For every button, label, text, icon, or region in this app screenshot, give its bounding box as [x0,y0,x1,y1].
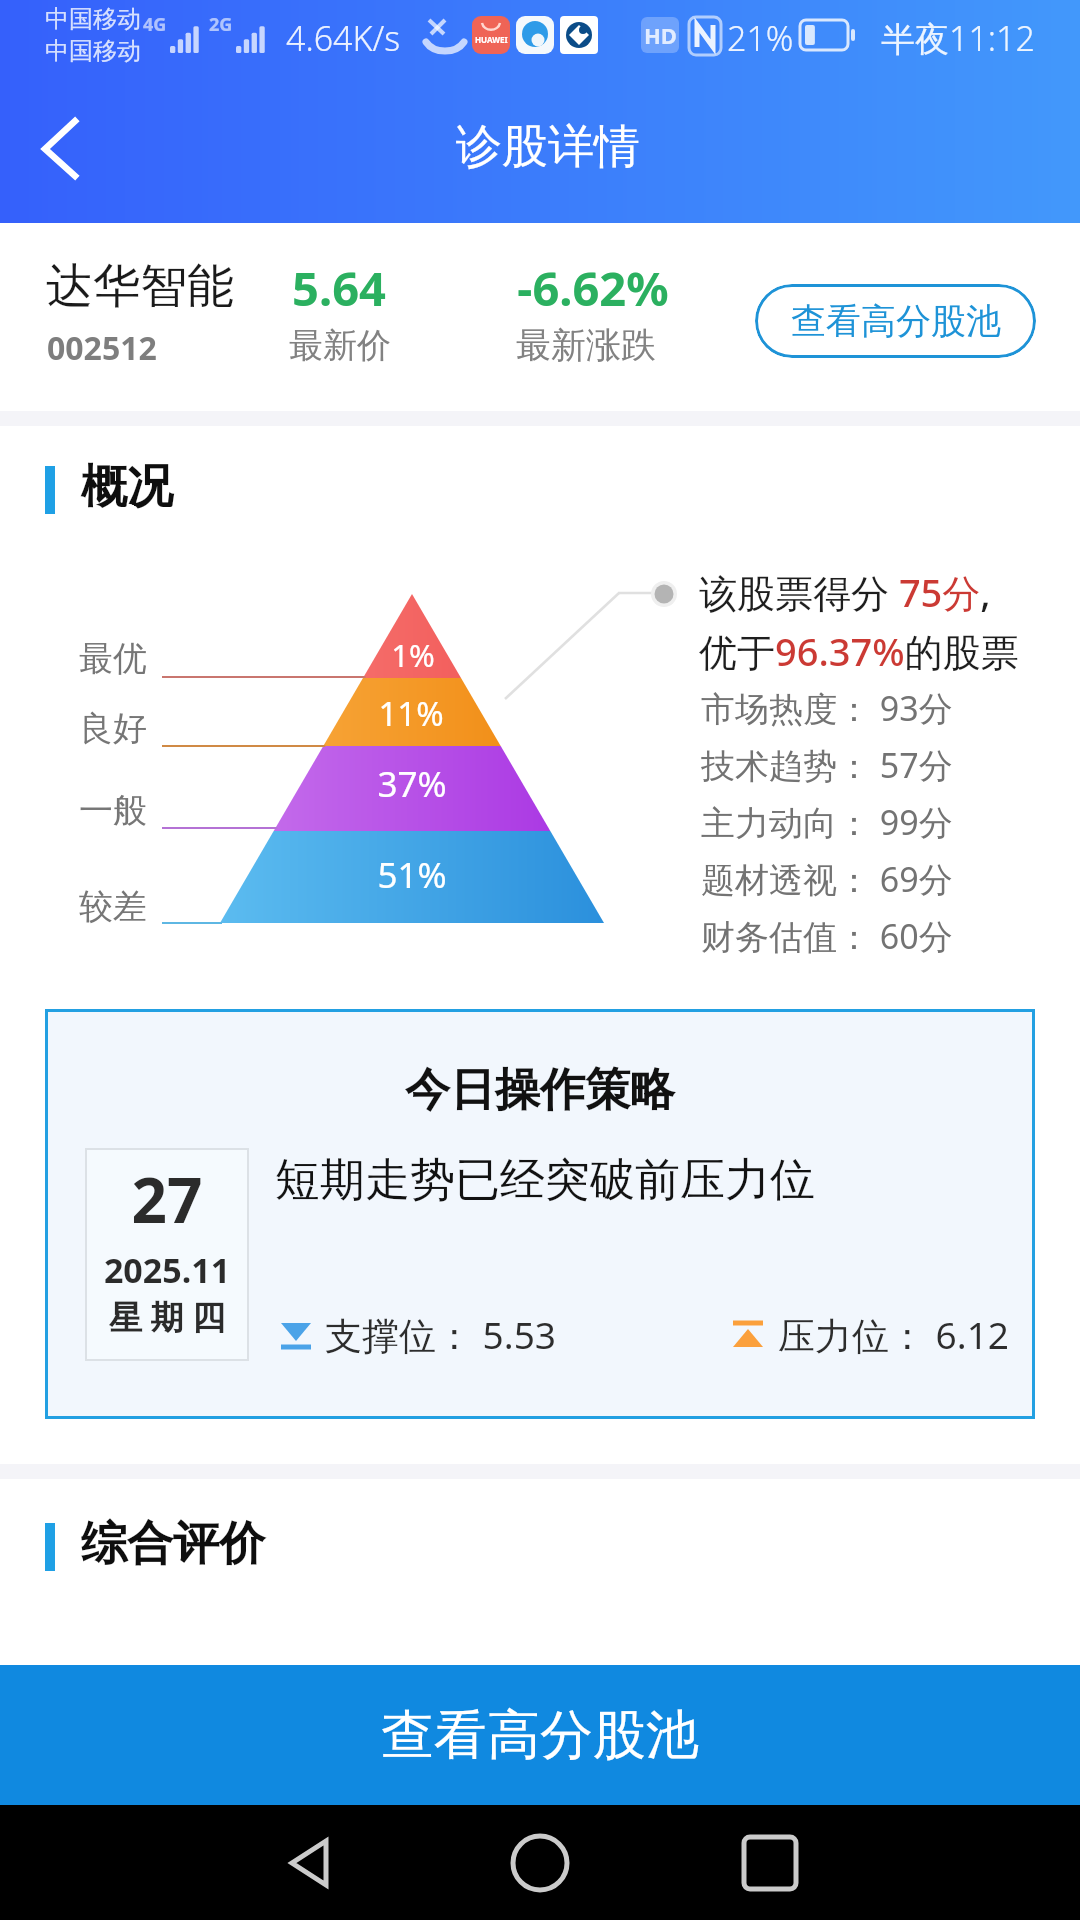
staticText: 27 [87,1157,247,1241]
staticText: 财务估值： 60分 [701,913,953,959]
button[interactable]: 查看高分股池 [755,284,1036,358]
staticText: 压力位： 6.12 [778,1309,1010,1360]
staticText: 今日操作策略 [260,1062,820,1119]
staticText: 最优 [79,637,147,680]
staticText: 达华智能 [46,257,234,316]
staticText: 较差 [79,885,147,928]
staticText: 中国移动 [45,4,141,34]
staticText: 21% [727,15,794,61]
staticText: 技术趋势： 57分 [701,742,953,788]
staticText: 4.64K/s [286,15,401,61]
staticText: 1% [333,634,493,676]
staticText: 一般 [79,789,147,832]
staticText: 诊股详情 [348,118,748,176]
staticText: 最新涨跌 [456,323,716,367]
staticText: 短期走势已经突破前压力位 [275,1152,815,1209]
staticText: 37% [322,760,502,808]
staticText: -6.62% [463,256,723,320]
staticText: 市场热度： 93分 [701,685,953,731]
staticText: 星 期 四 [87,1294,247,1339]
staticText: HUAWEI [475,34,508,45]
staticText: 11% [331,691,491,736]
staticText: 2025.11 [87,1247,247,1293]
staticText: 支撑位： 5.53 [325,1309,557,1360]
staticText: 中国移动 [45,36,141,66]
staticText: 51% [322,851,502,899]
staticText: 最新价 [230,324,450,367]
button[interactable]: 查看高分股池 [0,1665,1080,1805]
button[interactable]: Home [500,1823,580,1903]
staticText: 该股票得分 75分, [699,566,991,618]
button[interactable]: Recents [730,1823,810,1903]
staticText: 题材透视： 69分 [701,856,953,902]
button[interactable]: 今日操作策略 [45,1009,1035,1419]
staticText: 002512 [47,326,157,370]
staticText: 查看高分股池 [791,299,1001,343]
staticText: 综合评价 [81,1515,265,1573]
staticText: 主力动向： 99分 [701,799,953,845]
staticText: 概况 [81,458,173,516]
staticText: 良好 [79,707,147,750]
staticText: 优于96.37%的股票 [699,625,1019,677]
staticText: 4G [143,12,167,37]
staticText: 2G [209,12,233,37]
staticText: HD [644,20,677,50]
button[interactable]: Back [270,1823,350,1903]
staticText: 查看高分股池 [381,1702,699,1769]
staticText: 5.64 [229,256,449,320]
button[interactable]: Back [20,105,106,191]
staticText: 半夜11:12 [881,15,1035,61]
